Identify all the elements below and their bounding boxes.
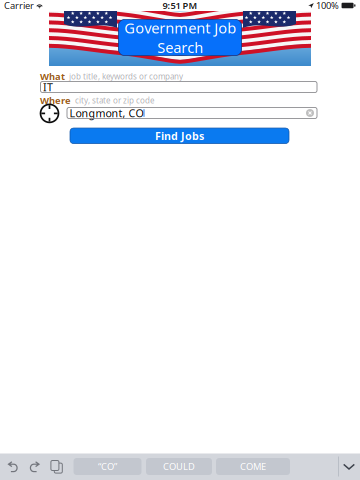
button[interactable]: Hide keyboard [334, 454, 360, 479]
staticText: 9:51 PM [162, 0, 197, 12]
button[interactable]: Redo [23, 454, 47, 479]
button[interactable]: “CO” [73, 458, 141, 475]
button[interactable]: Paste [44, 454, 68, 479]
staticText: COME [240, 460, 266, 473]
staticText: “CO” [98, 460, 117, 473]
staticText: Where [40, 94, 71, 107]
button[interactable]: COULD [146, 458, 212, 475]
staticText: IT [43, 80, 53, 94]
staticText: What [40, 70, 65, 83]
button[interactable]: Find Jobs [70, 128, 289, 144]
staticText: Longmont, CO [69, 106, 143, 120]
staticText: Find Jobs [155, 129, 204, 143]
staticText: Government Job Search [124, 18, 236, 57]
staticText: COULD [163, 460, 195, 473]
staticText: 100% [316, 0, 339, 12]
staticText: job title, keywords or company [69, 71, 183, 82]
button[interactable]: COME [216, 458, 290, 475]
button[interactable]: Undo [0, 454, 24, 479]
staticText: Carrier [4, 0, 34, 12]
staticText: city, state or zip code [75, 95, 155, 106]
